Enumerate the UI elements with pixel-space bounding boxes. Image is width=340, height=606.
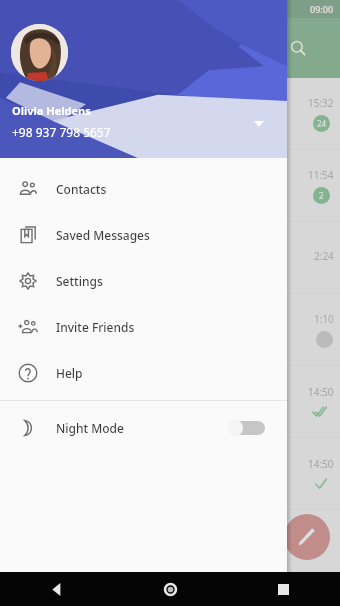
button[interactable]: Search: [281, 31, 315, 65]
button[interactable]: Settings: [0, 258, 287, 304]
button[interactable]: Help: [0, 350, 287, 396]
staticText: Night Mode: [56, 420, 124, 436]
staticText: Saved Messages: [56, 227, 150, 243]
button[interactable]: Night Mode: [0, 401, 287, 455]
button[interactable]: Saved Messages: [0, 212, 287, 258]
button[interactable]: Recents: [227, 572, 340, 606]
staticText: Help: [56, 365, 83, 381]
button[interactable]: Back: [0, 572, 114, 606]
staticText: Invite Friends: [56, 319, 135, 335]
button[interactable]: Switch account: [247, 112, 271, 136]
button[interactable]: Profile photo: [11, 24, 68, 81]
staticText: 15:32: [308, 96, 334, 110]
staticText: …: [2, 396, 10, 408]
button[interactable]: New message: [284, 514, 330, 560]
staticText: 1:10: [314, 312, 334, 326]
button[interactable]: Home: [114, 572, 227, 606]
staticText: +98 937 798 5657: [12, 124, 111, 140]
staticText: Olivia Heldens: [12, 103, 91, 118]
staticText: 2:24: [314, 249, 334, 263]
staticText: 09:00: [310, 3, 334, 15]
staticText: Settings: [56, 273, 103, 289]
staticText: 14:50: [308, 385, 334, 399]
staticText: 24: [317, 118, 327, 129]
staticText: 14:50: [308, 457, 334, 471]
button[interactable]: Invite Friends: [0, 304, 287, 350]
staticText: Contacts: [56, 181, 107, 197]
button[interactable]: Contacts: [0, 166, 287, 212]
staticText: 11:54: [308, 168, 334, 182]
staticText: 2: [319, 190, 324, 201]
